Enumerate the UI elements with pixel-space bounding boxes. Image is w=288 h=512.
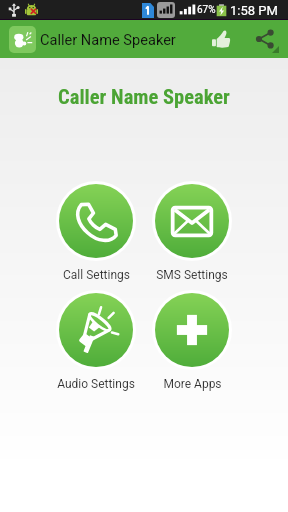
staticText: Caller Name Speaker xyxy=(0,85,288,109)
button[interactable]: Share xyxy=(250,24,280,54)
staticText: More Apps xyxy=(163,377,222,391)
staticText: 67% xyxy=(197,4,216,16)
staticText: SMS Settings xyxy=(156,268,228,282)
staticText: Audio Settings xyxy=(57,377,135,391)
staticText: 1:58 PM xyxy=(230,3,278,18)
button[interactable]: Audio Settings xyxy=(48,290,144,391)
staticText: Call Settings xyxy=(63,268,130,282)
button[interactable]: SMS Settings xyxy=(144,181,240,282)
staticText: Caller Name Speaker xyxy=(40,31,176,48)
button[interactable]: More Apps xyxy=(144,290,240,391)
button[interactable]: Rate this app xyxy=(206,24,236,54)
button[interactable]: Call Settings xyxy=(48,181,144,282)
